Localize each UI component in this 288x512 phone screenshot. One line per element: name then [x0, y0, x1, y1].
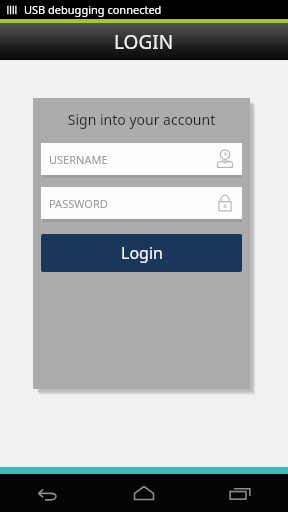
- button[interactable]: Back: [13, 474, 83, 512]
- staticText: USERNAME: [49, 152, 214, 167]
- button[interactable]: USERNAME: [41, 143, 242, 175]
- staticText: PASSWORD: [49, 196, 214, 211]
- staticText: Sign into your account: [41, 110, 242, 129]
- staticText: Login: [121, 242, 163, 264]
- button[interactable]: Recent apps: [205, 474, 275, 512]
- button[interactable]: Login: [41, 234, 242, 272]
- staticText: USB debugging connected: [24, 2, 162, 17]
- staticText: LOGIN: [114, 29, 174, 55]
- button[interactable]: Home: [109, 474, 179, 512]
- button[interactable]: PASSWORD: [41, 187, 242, 219]
